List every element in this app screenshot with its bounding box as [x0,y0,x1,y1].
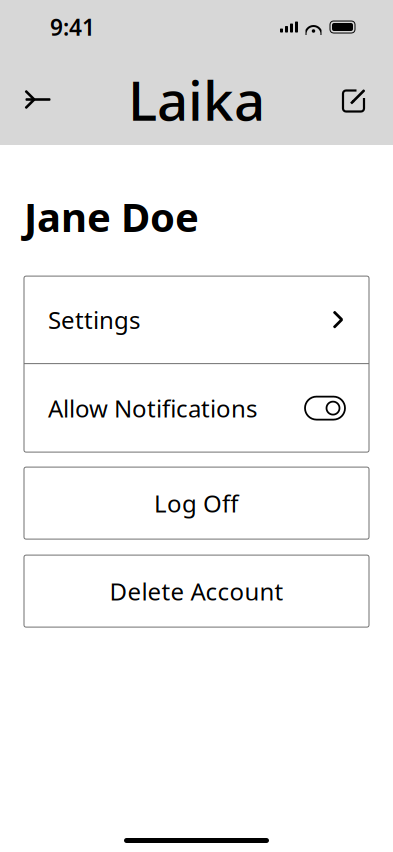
staticText: Log Off [154,487,239,519]
staticText: Settings [48,304,140,336]
button[interactable]: Settings [24,276,369,363]
staticText: Jane Doe [24,190,199,243]
staticText: Allow Notifications [48,392,257,424]
staticText: Delete Account [109,575,283,607]
button[interactable]: Back [12,73,64,125]
staticText: 9:41 [50,12,95,42]
button[interactable]: Log Off [24,467,369,539]
button[interactable]: Edit [329,73,381,125]
staticText: Laika [128,63,265,136]
button[interactable]: Delete Account [24,555,369,627]
button[interactable]: Allow Notifications [24,364,369,452]
